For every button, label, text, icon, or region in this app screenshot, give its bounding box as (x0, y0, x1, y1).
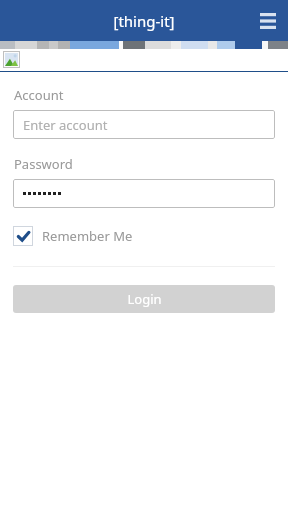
button[interactable]: Menu (254, 7, 282, 35)
button[interactable] (13, 179, 275, 208)
staticText: Password (14, 155, 73, 173)
staticText: Login (127, 290, 162, 308)
button[interactable]: Login (13, 285, 275, 313)
button[interactable]: Enter account (13, 110, 275, 139)
staticText: Remember Me (42, 227, 133, 245)
staticText: Account (14, 86, 64, 104)
staticText: [thing-it] (113, 11, 175, 31)
staticText: Enter account (23, 116, 108, 134)
button[interactable]: Remember Me (13, 226, 133, 246)
